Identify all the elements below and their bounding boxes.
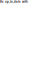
- staticText: Be up-to-date with: [0, 0, 28, 3]
